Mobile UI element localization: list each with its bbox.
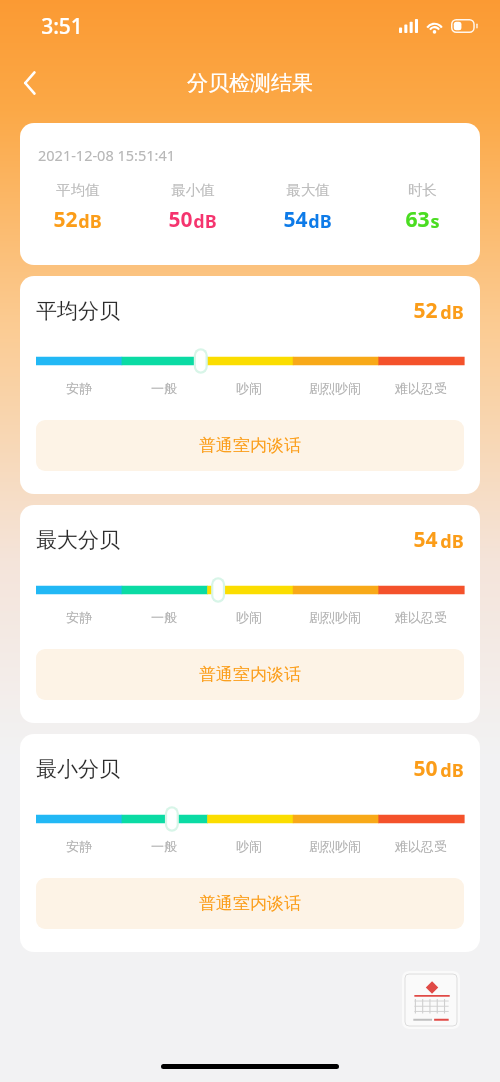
staticText: dB: [440, 529, 464, 554]
staticText: 剧烈吵闹: [309, 609, 361, 625]
staticText: 50: [168, 205, 193, 234]
button[interactable]: 返回: [6, 59, 54, 107]
staticText: 难以忍受: [395, 838, 447, 854]
staticText: dB: [440, 300, 464, 325]
staticText: 剧烈吵闹: [309, 838, 361, 854]
staticText: 安静: [66, 609, 92, 625]
staticText: 63: [405, 205, 430, 234]
staticText: dB: [308, 209, 332, 234]
staticText: 54: [283, 205, 308, 234]
staticText: dB: [440, 758, 464, 783]
staticText: 难以忍受: [395, 609, 447, 625]
staticText: 52: [53, 205, 78, 234]
staticText: 平均值: [56, 181, 100, 199]
staticText: 安静: [66, 838, 92, 854]
button[interactable]: 最大分贝: [20, 505, 480, 723]
staticText: s: [430, 209, 440, 234]
staticText: 最大值: [286, 181, 330, 199]
button[interactable]: 普通室内谈话: [36, 649, 464, 700]
button[interactable]: 普通室内谈话: [36, 878, 464, 929]
staticText: dB: [78, 209, 102, 234]
staticText: 最小分贝: [36, 756, 120, 782]
staticText: 时长: [408, 181, 437, 199]
staticText: 吵闹: [236, 838, 262, 854]
staticText: 普通室内谈话: [199, 664, 301, 685]
staticText: 平均分贝: [36, 298, 120, 324]
other: 应用标识: [402, 971, 460, 1029]
staticText: 吵闹: [236, 380, 262, 396]
staticText: 52: [413, 296, 438, 325]
staticText: 最小值: [171, 181, 215, 199]
button[interactable]: 普通室内谈话: [36, 420, 464, 471]
staticText: 3:51: [41, 12, 83, 41]
staticText: 一般: [151, 609, 177, 625]
staticText: 50: [413, 754, 438, 783]
staticText: 普通室内谈话: [199, 435, 301, 456]
staticText: 普通室内谈话: [199, 893, 301, 914]
staticText: 54: [413, 525, 438, 554]
button[interactable]: 平均分贝: [20, 276, 480, 494]
staticText: 安静: [66, 380, 92, 396]
staticText: 最大分贝: [36, 527, 120, 553]
staticText: 2021-12-08 15:51:41: [38, 145, 175, 165]
staticText: 分贝检测结果: [187, 70, 313, 96]
staticText: 难以忍受: [395, 380, 447, 396]
staticText: 剧烈吵闹: [309, 380, 361, 396]
staticText: 吵闹: [236, 609, 262, 625]
staticText: 一般: [151, 380, 177, 396]
button[interactable]: 最小分贝: [20, 734, 480, 952]
staticText: dB: [193, 209, 217, 234]
staticText: 一般: [151, 838, 177, 854]
